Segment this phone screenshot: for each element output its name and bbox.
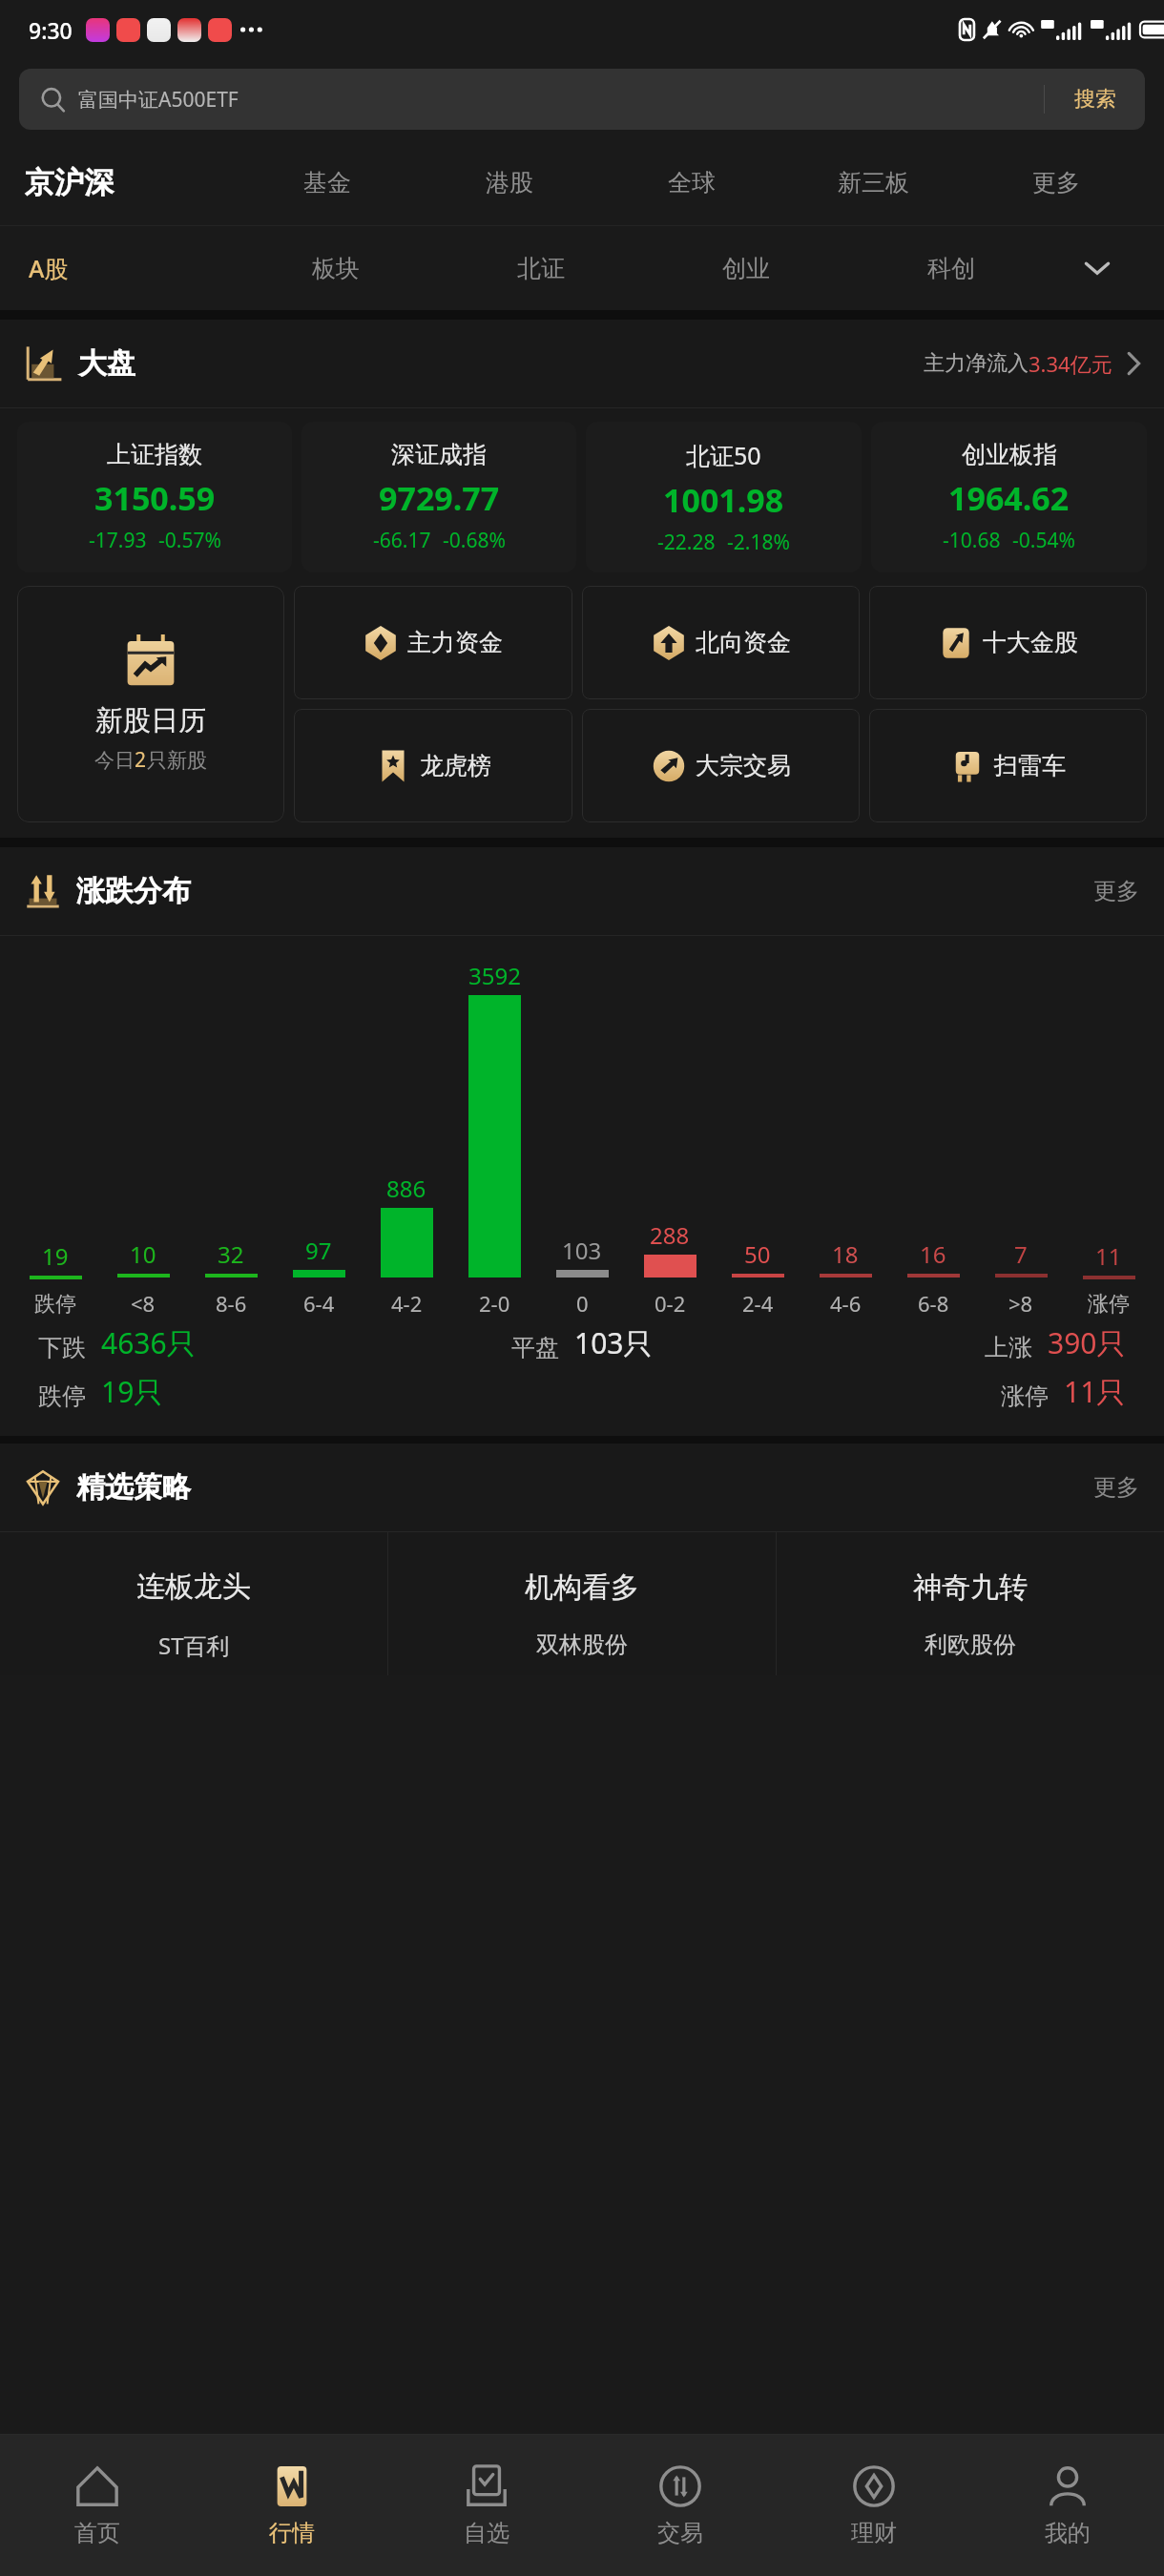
- staticText: 2-0: [479, 1289, 510, 1318]
- staticText: 主力净流入: [924, 350, 1029, 377]
- staticText: 神奇九转: [913, 1569, 1028, 1606]
- staticText: 北证50: [686, 439, 761, 471]
- staticText: 大盘: [78, 345, 135, 382]
- staticText: ST百利: [158, 1630, 230, 1661]
- staticText: 创业: [722, 254, 770, 283]
- button[interactable]: 更多: [965, 139, 1147, 225]
- staticText: 11: [1095, 1240, 1122, 1272]
- staticText: 10: [130, 1238, 156, 1270]
- button[interactable]: 主力资金: [294, 586, 572, 699]
- button[interactable]: 十大金股: [869, 586, 1147, 699]
- staticText: -66.17: [373, 527, 431, 554]
- staticText: 连板龙头: [136, 1568, 251, 1605]
- staticText: 涨跌分布: [76, 873, 191, 909]
- staticText: 龙虎榜: [420, 751, 491, 780]
- staticText: 1001.98: [663, 478, 784, 522]
- button[interactable]: A股: [29, 226, 233, 310]
- staticText: 理财: [851, 2519, 897, 2547]
- staticText: -2.18%: [727, 529, 790, 556]
- staticText: 0-2: [655, 1289, 686, 1318]
- staticText: 跌停: [34, 1291, 76, 1318]
- staticText: 更多: [1032, 168, 1080, 197]
- button[interactable]: 新股日历: [17, 586, 284, 822]
- button[interactable]: 扫雷车: [869, 709, 1147, 822]
- staticText: 十大金股: [983, 628, 1078, 657]
- button[interactable]: 北证50: [586, 422, 862, 572]
- staticText: 更多: [1093, 1473, 1139, 1502]
- button[interactable]: 港股: [418, 139, 600, 225]
- staticText: -22.28: [657, 529, 716, 556]
- button[interactable]: 新三板: [782, 139, 965, 225]
- staticText: 只新股: [147, 748, 207, 773]
- button[interactable]: 创业板指: [871, 422, 1147, 572]
- button[interactable]: 连板龙头: [0, 1532, 387, 1675]
- button[interactable]: 搜索: [1045, 69, 1145, 130]
- button[interactable]: 行情: [195, 2435, 389, 2576]
- staticText: A股: [29, 252, 69, 284]
- staticText: 港股: [486, 168, 533, 197]
- staticText: 科创: [927, 254, 975, 283]
- staticText: 深证成指: [391, 440, 487, 469]
- button[interactable]: 创业: [643, 226, 848, 310]
- button[interactable]: 京沪深: [25, 139, 236, 225]
- button[interactable]: 神奇九转: [777, 1532, 1164, 1675]
- staticText: 103只: [574, 1323, 653, 1362]
- staticText: 富国中证A500ETF: [78, 86, 239, 114]
- staticText: 利欧股份: [925, 1631, 1016, 1659]
- staticText: -0.57%: [158, 527, 221, 554]
- staticText: 下跌: [38, 1333, 86, 1362]
- button[interactable]: 上证指数: [17, 422, 292, 572]
- button[interactable]: 机构看多: [388, 1532, 776, 1675]
- staticText: 北向资金: [696, 628, 791, 657]
- staticText: 19只: [101, 1372, 163, 1411]
- staticText: 新三板: [838, 168, 909, 197]
- button[interactable]: 富国中证A500ETF: [19, 69, 1145, 130]
- button[interactable]: 龙虎榜: [294, 709, 572, 822]
- staticText: 9729.77: [379, 476, 500, 520]
- staticText: 3.34亿元: [1029, 349, 1112, 378]
- button[interactable]: 北向资金: [582, 586, 860, 699]
- button[interactable]: 首页: [0, 2435, 195, 2576]
- staticText: 京沪深: [25, 164, 114, 201]
- staticText: 搜索: [1074, 86, 1116, 113]
- staticText: 板块: [312, 254, 360, 283]
- button[interactable]: 大盘: [0, 320, 1164, 407]
- staticText: 6-8: [918, 1289, 949, 1318]
- button[interactable]: 理财: [777, 2435, 970, 2576]
- staticText: 行情: [269, 2519, 315, 2547]
- staticText: 主力资金: [407, 628, 503, 657]
- button[interactable]: 更多: [1093, 1473, 1139, 1502]
- staticText: 上证指数: [107, 440, 202, 469]
- button[interactable]: 大宗交易: [582, 709, 860, 822]
- button[interactable]: 基金: [236, 139, 418, 225]
- button[interactable]: 北证: [438, 226, 643, 310]
- button[interactable]: 自选: [389, 2435, 583, 2576]
- staticText: 288: [650, 1219, 690, 1251]
- button[interactable]: Expand tabs: [1053, 226, 1141, 310]
- button[interactable]: 更多: [1093, 877, 1139, 905]
- staticText: 扫雷车: [994, 751, 1066, 780]
- button[interactable]: 深证成指: [301, 422, 576, 572]
- button[interactable]: 全球: [600, 139, 782, 225]
- staticText: 2-4: [742, 1289, 774, 1318]
- button[interactable]: 科创: [848, 226, 1053, 310]
- staticText: 涨停: [1001, 1381, 1049, 1411]
- staticText: 97: [305, 1235, 332, 1266]
- staticText: 3592: [468, 960, 521, 991]
- staticText: 19: [42, 1240, 69, 1272]
- staticText: 7: [1014, 1238, 1028, 1270]
- staticText: 50: [744, 1238, 771, 1270]
- staticText: 9:30: [29, 15, 73, 45]
- staticText: 4-6: [830, 1289, 862, 1318]
- button[interactable]: 板块: [233, 226, 438, 310]
- staticText: 精选策略: [76, 1469, 191, 1506]
- staticText: 4-2: [391, 1289, 423, 1318]
- staticText: 8-6: [216, 1289, 247, 1318]
- staticText: 北证: [517, 254, 565, 283]
- staticText: 我的: [1045, 2519, 1091, 2547]
- staticText: 首页: [74, 2519, 120, 2547]
- staticText: -0.68%: [443, 527, 506, 554]
- button[interactable]: 我的: [970, 2435, 1164, 2576]
- button[interactable]: 交易: [583, 2435, 777, 2576]
- staticText: 上涨: [985, 1333, 1032, 1362]
